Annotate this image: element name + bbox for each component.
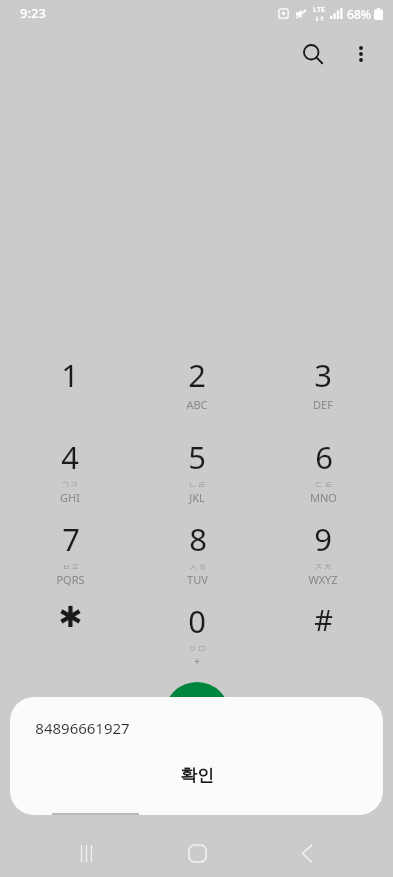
staticText: GHI — [60, 490, 80, 505]
staticText: TUV — [187, 572, 208, 587]
staticText: 2 — [188, 354, 206, 396]
staticText: 8 — [189, 518, 207, 560]
staticText: ㅈㅊ — [314, 561, 332, 572]
button[interactable]: ✱ — [14, 594, 126, 676]
button[interactable]: # — [267, 594, 379, 676]
staticText: ㄴㄹ — [188, 479, 206, 490]
staticText: 0 — [188, 600, 206, 642]
staticText: MNO — [310, 490, 337, 505]
button[interactable]: 확인 — [10, 752, 383, 798]
staticText: JKL — [189, 490, 205, 505]
button[interactable]: 4 — [14, 430, 126, 512]
staticText: ㅅㅎ — [189, 561, 207, 572]
staticText: 1 — [61, 354, 79, 396]
button[interactable]: 8 — [141, 512, 253, 594]
button[interactable]: 6 — [267, 430, 379, 512]
staticText: 7 — [62, 518, 80, 560]
staticText: ✱ — [58, 600, 83, 634]
button[interactable]: 3 — [267, 348, 379, 430]
button[interactable]: Search — [289, 30, 337, 78]
staticText: ㅂㅍ — [62, 561, 80, 572]
staticText: 84896661927 — [35, 718, 130, 738]
staticText: 4 — [61, 436, 79, 478]
staticText: 9 — [314, 518, 332, 560]
button[interactable]: 7 — [14, 512, 126, 594]
staticText: + — [194, 654, 200, 668]
staticText: ㄱㅋ — [61, 479, 79, 490]
staticText: DEF — [313, 397, 333, 412]
staticText: 68% — [347, 6, 371, 22]
button[interactable]: 9 — [267, 512, 379, 594]
button[interactable]: 1 — [14, 348, 126, 430]
staticText: # — [314, 600, 333, 639]
button[interactable]: Home — [173, 829, 221, 877]
staticText: WXYZ — [308, 572, 338, 587]
staticText: ABC — [186, 397, 208, 412]
button[interactable]: 0 — [141, 594, 253, 676]
button[interactable]: Call — [164, 682, 230, 748]
staticText: PQRS — [56, 572, 85, 587]
staticText: ㄷㅌ — [315, 479, 333, 490]
button[interactable]: Back — [283, 829, 331, 877]
button[interactable]: 2 — [141, 348, 253, 430]
staticText: LTE — [313, 5, 325, 15]
staticText: 5 — [188, 436, 206, 478]
staticText: ㅇㅁ — [188, 643, 206, 654]
staticText: 6 — [315, 436, 333, 478]
staticText: 3 — [314, 354, 332, 396]
staticText: 확인 — [180, 765, 214, 786]
staticText: 9:23 — [20, 4, 46, 22]
button[interactable]: More options — [337, 30, 385, 78]
button[interactable]: Recents — [62, 829, 110, 877]
staticText: ↓↑ — [314, 15, 325, 22]
button[interactable]: 5 — [141, 430, 253, 512]
